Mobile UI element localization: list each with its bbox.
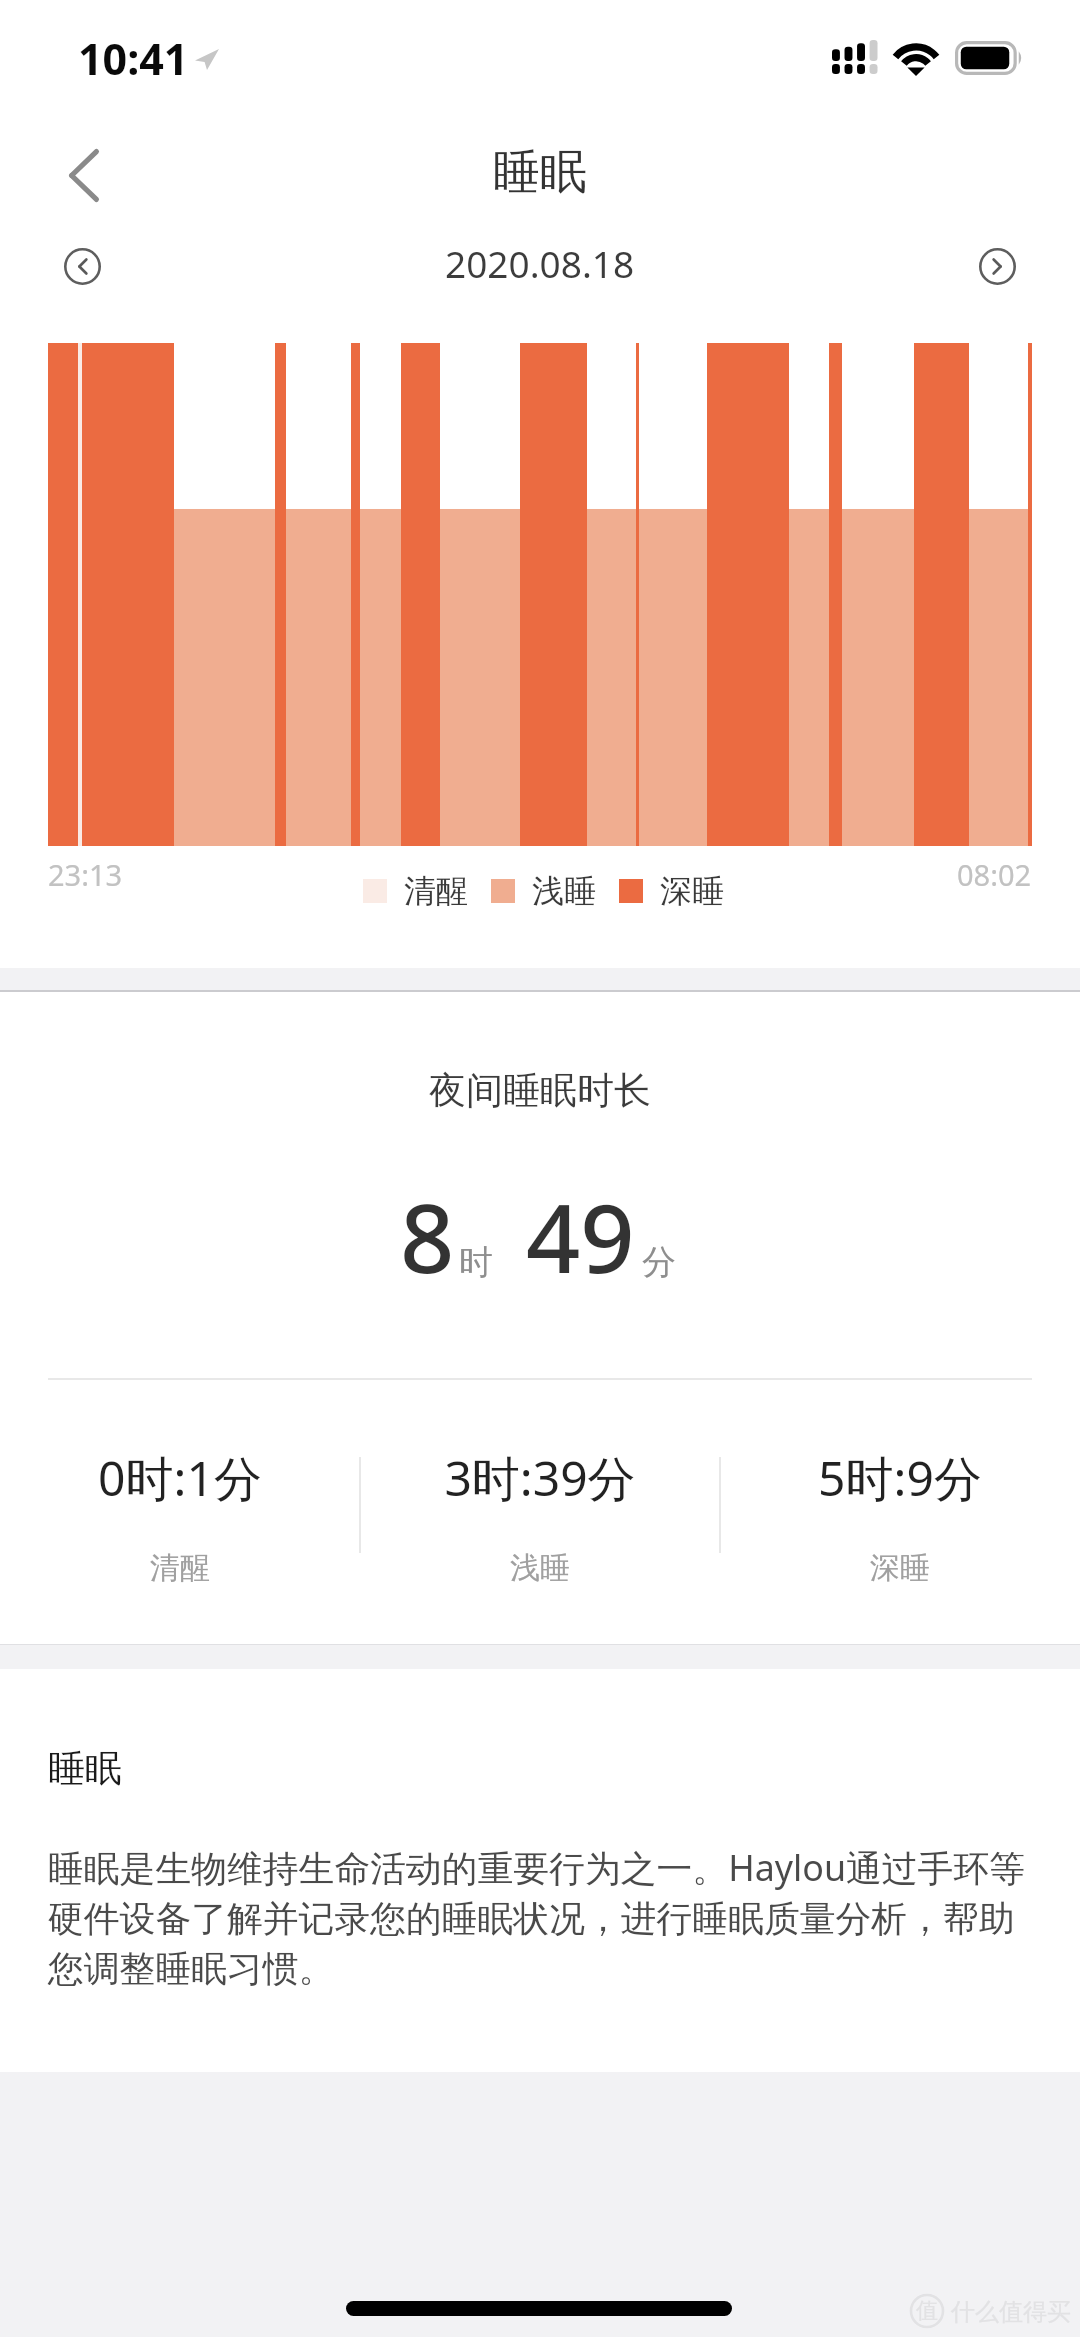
staticText: 睡眠 [48, 1745, 122, 1792]
staticText: 睡眠是生物维持生命活动的重要行为之一。Haylou通过手环等硬件设备了解并记录您… [48, 1843, 1034, 1992]
staticText: 3时:39分 [360, 1445, 720, 1511]
staticText: 清醒 [0, 1549, 360, 1587]
button[interactable]: Previous day [64, 248, 101, 285]
staticText: 浅睡 [360, 1549, 720, 1587]
staticText: 什么值得买 [951, 2297, 1071, 2327]
button[interactable]: 0时:1分 [0, 1431, 360, 1581]
button[interactable]: 3时:39分 [360, 1431, 720, 1581]
staticText: 值 [916, 2297, 938, 2325]
button[interactable]: 2020.08.18 [445, 238, 635, 288]
staticText: 浅睡 [532, 871, 596, 911]
button[interactable]: Back [0, 112, 118, 224]
staticText: 0时:1分 [0, 1445, 360, 1511]
staticText: 夜间睡眠时长 [0, 1067, 1080, 1114]
staticText: 10:41 [78, 29, 189, 88]
staticText: 睡眠 [493, 143, 587, 202]
staticText: 5时:9分 [720, 1445, 1080, 1511]
button[interactable]: Next day [979, 248, 1016, 285]
staticText: 分 [642, 1241, 676, 1284]
button[interactable]: 浅睡 [491, 871, 596, 911]
staticText: 08:02 [957, 855, 1032, 894]
staticText: 时 [459, 1241, 493, 1284]
button[interactable]: 清醒 [363, 871, 468, 911]
button[interactable]: 5时:9分 [720, 1431, 1080, 1581]
staticText: 清醒 [404, 871, 468, 911]
staticText: 49 [526, 1171, 635, 1300]
staticText: 深睡 [720, 1549, 1080, 1587]
staticText: 深睡 [660, 871, 724, 911]
staticText: 2020.08.18 [445, 238, 635, 288]
button[interactable]: 深睡 [619, 871, 724, 911]
staticText: 23:13 [48, 855, 123, 894]
staticText: 8 [400, 1171, 455, 1300]
